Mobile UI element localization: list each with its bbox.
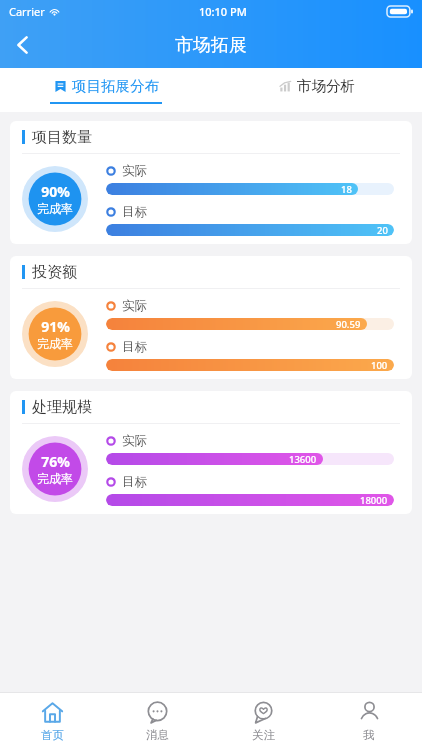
button[interactable]: 关注 — [210, 693, 316, 750]
staticText: 目标 — [122, 474, 147, 490]
staticText: 完成率 — [37, 201, 73, 216]
staticText: 处理规模 — [32, 398, 92, 417]
staticText: 90% — [41, 182, 70, 201]
staticText: 目标 — [122, 339, 147, 355]
staticText: 市场拓展 — [175, 34, 247, 57]
button[interactable]: 处理规模 — [10, 391, 412, 514]
staticText: 关注 — [252, 728, 275, 742]
staticText: 18 — [341, 183, 352, 195]
staticText: 完成率 — [37, 471, 73, 486]
staticText: 实际 — [122, 298, 147, 314]
staticText: 市场分析 — [297, 77, 355, 95]
staticText: 18000 — [360, 494, 388, 506]
staticText: 投资额 — [32, 263, 77, 282]
staticText: 项目拓展分布 — [72, 77, 159, 95]
staticText: 完成率 — [37, 336, 73, 351]
staticText: 首页 — [41, 728, 64, 742]
button[interactable]: 项目拓展分布 — [0, 68, 211, 112]
button[interactable]: 我 — [316, 693, 422, 750]
button[interactable]: 消息 — [105, 693, 210, 750]
staticText: 我 — [363, 728, 375, 742]
staticText: 90.59 — [336, 318, 361, 330]
button[interactable]: 市场分析 — [211, 68, 422, 112]
staticText: 76% — [41, 452, 70, 471]
button[interactable]: 首页 — [0, 693, 105, 750]
staticText: 实际 — [122, 433, 147, 449]
staticText: 10:10 PM — [199, 4, 247, 19]
staticText: 20 — [377, 224, 388, 236]
staticText: 91% — [41, 317, 70, 336]
staticText: 100 — [371, 359, 388, 371]
staticText: 项目数量 — [32, 128, 92, 147]
button[interactable]: Back — [0, 22, 46, 68]
button[interactable]: 项目数量 — [10, 121, 412, 244]
staticText: 13600 — [289, 453, 317, 465]
button[interactable]: 投资额 — [10, 256, 412, 379]
staticText: Carrier — [9, 4, 45, 19]
staticText: 目标 — [122, 204, 147, 220]
staticText: 实际 — [122, 163, 147, 179]
staticText: 消息 — [146, 728, 169, 742]
